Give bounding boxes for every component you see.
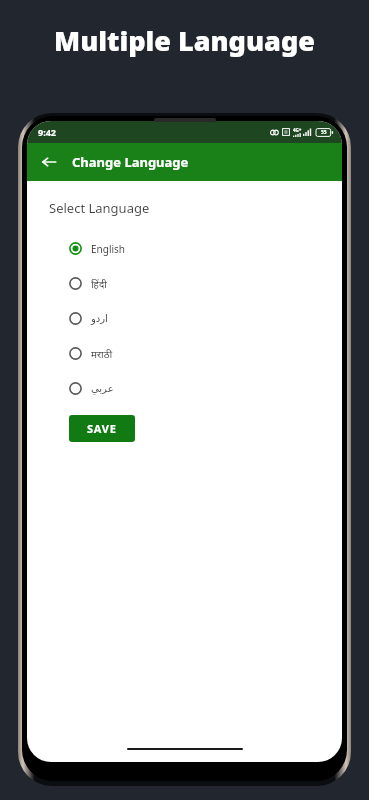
staticText: Multiple Language — [54, 22, 315, 59]
staticText: English — [91, 242, 126, 256]
button[interactable]: Back — [34, 147, 64, 177]
button[interactable]: English — [27, 231, 342, 266]
button[interactable]: عربي — [27, 371, 342, 406]
staticText: 4G+ — [293, 127, 302, 133]
staticText: SAVE — [87, 421, 117, 436]
staticText: 55 — [321, 129, 327, 136]
staticText: Change Language — [72, 153, 189, 171]
staticText: 9:42 — [38, 126, 56, 138]
button[interactable]: हिंदी — [27, 266, 342, 301]
button[interactable]: اردو — [27, 301, 342, 336]
staticText: عربي — [91, 383, 114, 395]
button[interactable]: SAVE — [69, 415, 135, 442]
staticText: Select Language — [49, 199, 150, 217]
staticText: हिंदी — [91, 277, 107, 291]
button[interactable]: मराठी — [27, 336, 342, 371]
staticText: اردو — [91, 313, 108, 325]
staticText: मराठी — [91, 347, 113, 361]
